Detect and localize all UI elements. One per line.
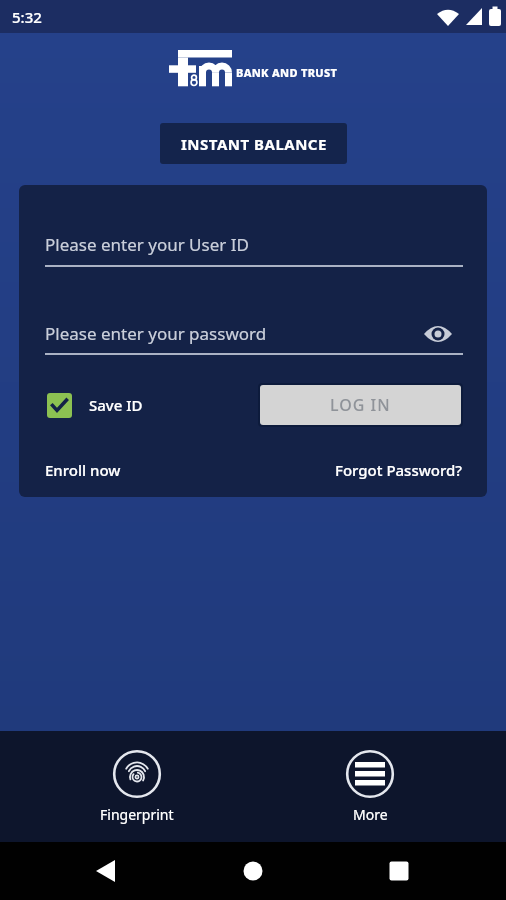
button[interactable]: Enroll now <box>45 460 121 480</box>
staticText: Please enter your password <box>45 322 267 345</box>
staticText: More <box>353 805 388 824</box>
staticText: Save ID <box>89 395 143 415</box>
staticText: Fingerprint <box>100 805 174 824</box>
staticText: LOG IN <box>330 394 391 416</box>
button[interactable] <box>168 842 337 900</box>
button[interactable]: Forgot Password? <box>335 460 463 480</box>
button[interactable]: INSTANT BALANCE <box>160 123 347 164</box>
button[interactable] <box>337 842 506 900</box>
button[interactable]: More <box>253 731 486 842</box>
staticText: Please enter your User ID <box>45 233 249 256</box>
button[interactable]: Please enter your password <box>45 322 463 345</box>
button[interactable]: Please enter your User ID <box>45 233 463 256</box>
staticText: Forgot Password? <box>335 460 463 480</box>
staticText: INSTANT BALANCE <box>181 134 327 154</box>
button[interactable]: LOG IN <box>260 385 461 425</box>
button[interactable]: Fingerprint <box>20 731 253 842</box>
staticText: BANK AND TRUST <box>236 65 338 80</box>
button[interactable] <box>0 842 168 900</box>
staticText: Enroll now <box>45 460 121 480</box>
button[interactable] <box>47 393 72 418</box>
staticText: 5:32 <box>12 7 42 27</box>
